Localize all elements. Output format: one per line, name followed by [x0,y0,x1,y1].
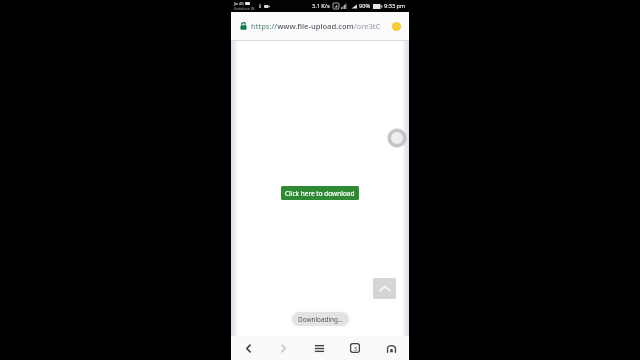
button[interactable]: Menu [301,336,337,360]
staticText: Downloading... [298,315,344,324]
staticText: https://www.file-upload.com/ore3tC [251,21,387,31]
staticText: 9:33 pm [384,2,406,10]
staticText: Vodafone IN [234,6,255,11]
button[interactable]: Home [373,336,409,360]
button[interactable]: Account [392,22,401,31]
button[interactable]: Drag handle [387,128,407,148]
button[interactable]: Click here to download [281,186,359,200]
staticText: Jio 4G [234,1,244,6]
button[interactable]: Tabs [337,336,373,360]
staticText: 3 [354,345,357,352]
staticText: 3.1 K/s [312,2,330,10]
staticText: Click here to download [285,189,355,198]
button[interactable]: Back [231,336,266,360]
staticText: 90% [359,2,371,10]
button[interactable]: Forward [266,336,301,360]
button[interactable]: Scroll to top [373,278,396,299]
